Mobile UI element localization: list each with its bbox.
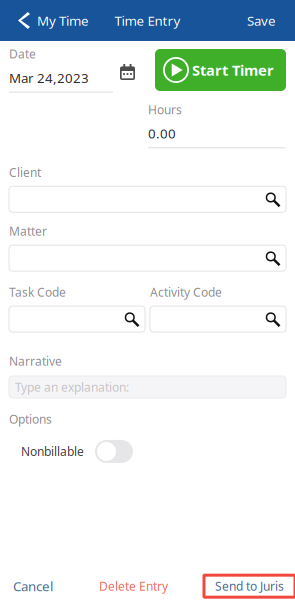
staticText: Client [9, 164, 41, 180]
button[interactable]: Save [247, 5, 295, 36]
staticText: Nonbillable [21, 443, 84, 459]
button[interactable]: Start Timer [155, 49, 286, 91]
staticText: Start Timer [192, 60, 274, 80]
staticText: Activity Code [150, 284, 222, 300]
staticText: Cancel [13, 577, 53, 595]
button[interactable]: Narrative [9, 376, 286, 398]
staticText: My Time [37, 12, 89, 29]
button[interactable]: Nonbillable [95, 440, 133, 463]
button[interactable]: My Time [0, 5, 89, 36]
staticText: Narrative [9, 353, 62, 369]
button[interactable]: Cancel [0, 571, 63, 601]
button[interactable]: Send to Juris [204, 575, 295, 597]
staticText: Date [9, 46, 36, 62]
button[interactable]: Search [9, 306, 145, 332]
button[interactable]: Search [150, 306, 286, 332]
staticText: Time Entry [114, 12, 180, 29]
staticText: Save [247, 12, 276, 29]
staticText: 0.00 [148, 125, 176, 142]
staticText: Send to Juris [215, 578, 284, 594]
button[interactable]: Delete Entry [93, 572, 174, 600]
staticText: Delete Entry [99, 578, 168, 594]
button[interactable]: Pick date [116, 60, 139, 84]
staticText: Options [9, 411, 52, 427]
staticText: Task Code [9, 284, 66, 300]
staticText: Hours [148, 102, 182, 117]
staticText: Matter [9, 223, 47, 239]
staticText: Mar 24,2023 [9, 69, 89, 87]
staticText: Type an explanation: [15, 379, 129, 395]
button[interactable]: Search [9, 186, 286, 212]
button[interactable]: Search [9, 245, 286, 271]
